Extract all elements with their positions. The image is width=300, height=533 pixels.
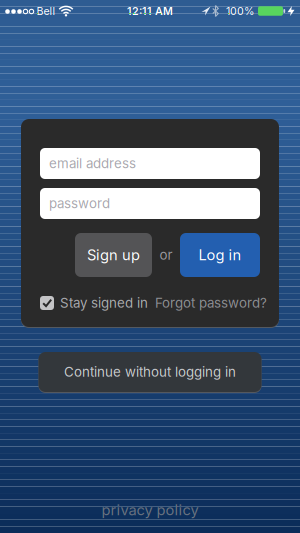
staticText: email address <box>49 156 136 171</box>
staticText: Continue without logging in <box>64 364 236 380</box>
staticText: Log in <box>198 246 241 264</box>
staticText: Sign up <box>87 246 140 264</box>
staticText: privacy policy <box>101 501 198 519</box>
staticText: 12:11 AM <box>127 5 173 17</box>
staticText: Forgot password? <box>155 295 267 311</box>
staticText: or <box>159 247 172 263</box>
staticText: Stay signed in <box>60 295 148 311</box>
staticText: password <box>49 196 110 211</box>
staticText: 100% <box>226 5 254 17</box>
staticText: Bell <box>36 5 55 17</box>
